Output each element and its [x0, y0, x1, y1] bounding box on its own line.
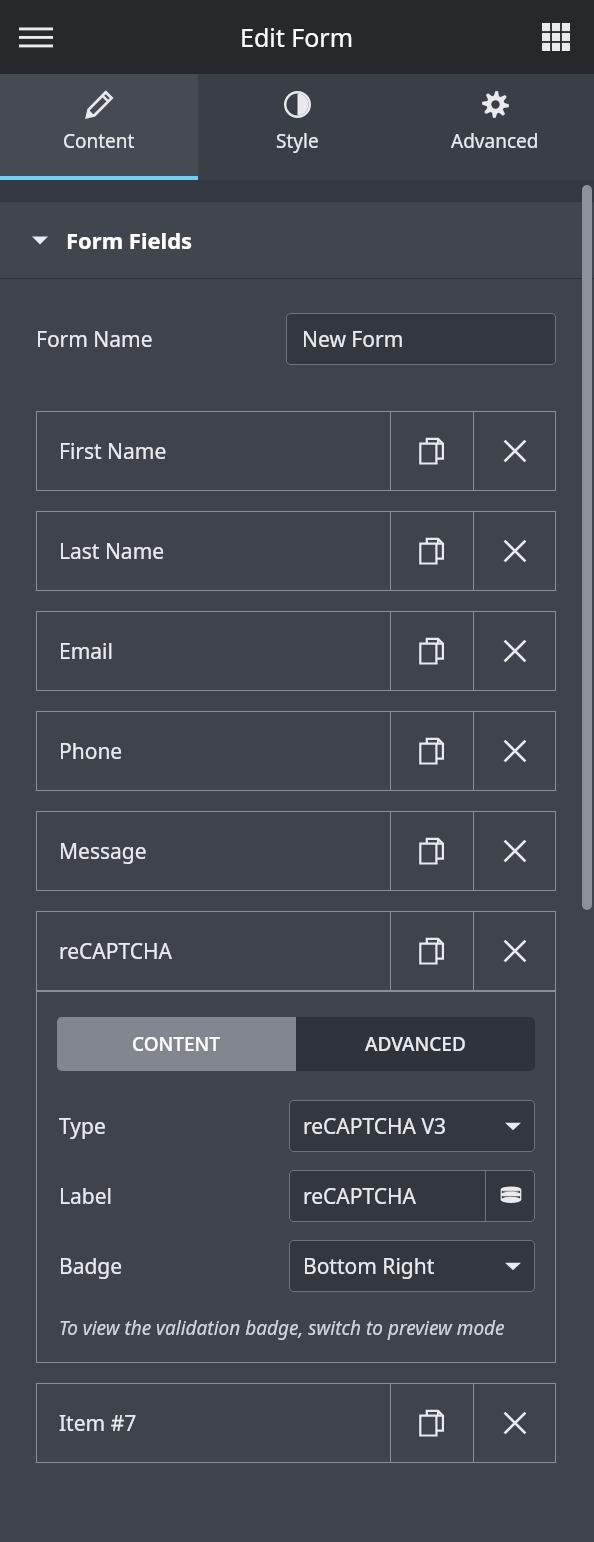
button[interactable]: Remove Message: [474, 811, 556, 891]
staticText: Form Name: [36, 325, 153, 354]
staticText: Advanced: [451, 128, 539, 154]
button[interactable]: Menu: [10, 11, 62, 63]
staticText: Email: [59, 637, 113, 666]
staticText: Edit Form: [240, 20, 354, 54]
button[interactable]: New Form: [286, 313, 556, 365]
button[interactable]: Duplicate reCAPTCHA: [391, 911, 473, 991]
staticText: First Name: [59, 437, 167, 466]
button[interactable]: Dynamic tags: [486, 1170, 535, 1222]
button[interactable]: Email: [36, 611, 390, 691]
button[interactable]: Remove First Name: [474, 411, 556, 491]
staticText: Item #7: [59, 1409, 137, 1438]
button[interactable]: Content: [0, 74, 198, 180]
button[interactable]: Duplicate Email: [391, 611, 473, 691]
staticText: Content: [63, 128, 135, 154]
button[interactable]: Remove reCAPTCHA: [474, 911, 556, 991]
button[interactable]: Form Fields: [0, 202, 594, 278]
button[interactable]: Duplicate Message: [391, 811, 473, 891]
button[interactable]: Item #7: [36, 1383, 390, 1463]
button[interactable]: Message: [36, 811, 390, 891]
button[interactable]: Duplicate Phone: [391, 711, 473, 791]
button[interactable]: reCAPTCHA: [36, 911, 390, 991]
staticText: reCAPTCHA: [303, 1182, 417, 1211]
button[interactable]: Duplicate First Name: [391, 411, 473, 491]
staticText: To view the validation badge, switch to …: [59, 1315, 505, 1341]
staticText: Last Name: [59, 537, 165, 566]
button[interactable]: CONTENT: [57, 1017, 296, 1071]
staticText: CONTENT: [132, 1031, 221, 1057]
staticText: Type: [59, 1112, 106, 1141]
button[interactable]: Duplicate Last Name: [391, 511, 473, 591]
button[interactable]: First Name: [36, 411, 390, 491]
staticText: Bottom Right: [303, 1252, 435, 1281]
button[interactable]: Remove Item #7: [474, 1383, 556, 1463]
button[interactable]: reCAPTCHA: [289, 1170, 485, 1222]
staticText: Phone: [59, 737, 123, 766]
staticText: Label: [59, 1182, 112, 1211]
button[interactable]: Last Name: [36, 511, 390, 591]
button[interactable]: Style: [198, 74, 396, 180]
staticText: reCAPTCHA V3: [303, 1112, 447, 1141]
staticText: Style: [276, 128, 319, 154]
staticText: Badge: [59, 1252, 123, 1281]
button[interactable]: Bottom Right: [289, 1240, 535, 1292]
button[interactable]: Duplicate Item #7: [391, 1383, 473, 1463]
staticText: reCAPTCHA: [59, 937, 173, 966]
button[interactable]: reCAPTCHA V3: [289, 1100, 535, 1152]
staticText: Form Fields: [66, 225, 193, 255]
staticText: ADVANCED: [365, 1031, 466, 1057]
button[interactable]: Apps grid: [530, 11, 582, 63]
button[interactable]: Phone: [36, 711, 390, 791]
staticText: New Form: [302, 325, 404, 354]
button[interactable]: Remove Last Name: [474, 511, 556, 591]
button[interactable]: Remove Email: [474, 611, 556, 691]
button[interactable]: ADVANCED: [296, 1017, 535, 1071]
button[interactable]: Advanced: [396, 74, 594, 180]
staticText: Message: [59, 837, 147, 866]
button[interactable]: Remove Phone: [474, 711, 556, 791]
